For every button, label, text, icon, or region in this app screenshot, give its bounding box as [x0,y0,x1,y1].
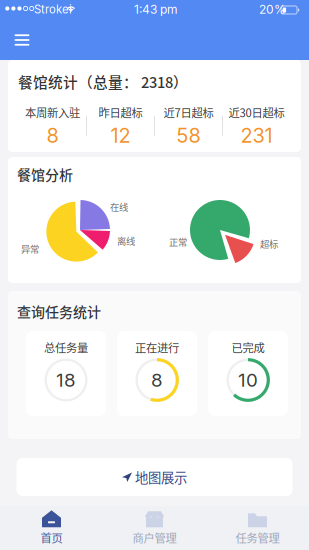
staticText: 正常 [169,235,187,248]
staticText: 58 [176,123,200,148]
staticText: 18 [56,369,76,391]
staticText: 1:43 pm [134,2,178,16]
button[interactable]: Menu [5,23,39,57]
staticText: 超标 [260,237,278,250]
staticText: 任务管理 [235,529,279,546]
staticText: 8 [46,123,58,148]
staticText: Strokei [34,2,72,16]
staticText: 在线 [110,200,128,213]
staticText: 地图展示 [135,467,187,487]
staticText: 本周新入驻 [25,104,80,120]
staticText: 首页 [40,529,62,546]
button[interactable]: 地图展示 [16,458,292,496]
staticText: 12 [110,123,130,148]
button[interactable]: 任务管理 [206,506,309,550]
staticText: 昨日超标 [98,104,142,120]
staticText: 总任务量 [44,339,88,355]
staticText: 餐馆统计（总量： 2318） [18,71,188,92]
staticText: 正在进行 [135,339,179,355]
staticText: 8 [151,369,163,391]
staticText: 异常 [21,242,39,255]
staticText: 20% [259,2,286,16]
staticText: 231 [240,123,272,148]
staticText: 离线 [117,234,135,247]
staticText: 商户管理 [132,529,176,546]
staticText: 近7日超标 [163,104,213,120]
button[interactable]: 商户管理 [103,506,206,550]
staticText: 近30日超标 [228,104,284,120]
staticText: 查询任务统计 [17,301,101,321]
staticText: 已完成 [231,339,264,355]
staticText: 10 [238,369,258,391]
staticText: 餐馆分析 [17,164,73,184]
button[interactable]: 首页 [0,506,103,550]
